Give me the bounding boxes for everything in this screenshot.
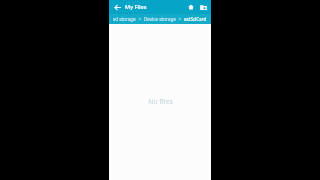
button[interactable]: Home <box>186 2 196 12</box>
button[interactable]: sd storage <box>109 14 211 24</box>
staticText: sd storage <box>113 16 136 22</box>
staticText: Device storage <box>144 16 176 22</box>
staticText: My Files <box>125 3 147 11</box>
staticText: > <box>176 16 184 22</box>
staticText: extSdCard <box>184 16 207 22</box>
button[interactable]: New folder <box>198 2 208 12</box>
staticText: > <box>136 16 144 22</box>
staticText: No files <box>148 97 173 107</box>
button[interactable]: Navigate up <box>113 3 122 12</box>
